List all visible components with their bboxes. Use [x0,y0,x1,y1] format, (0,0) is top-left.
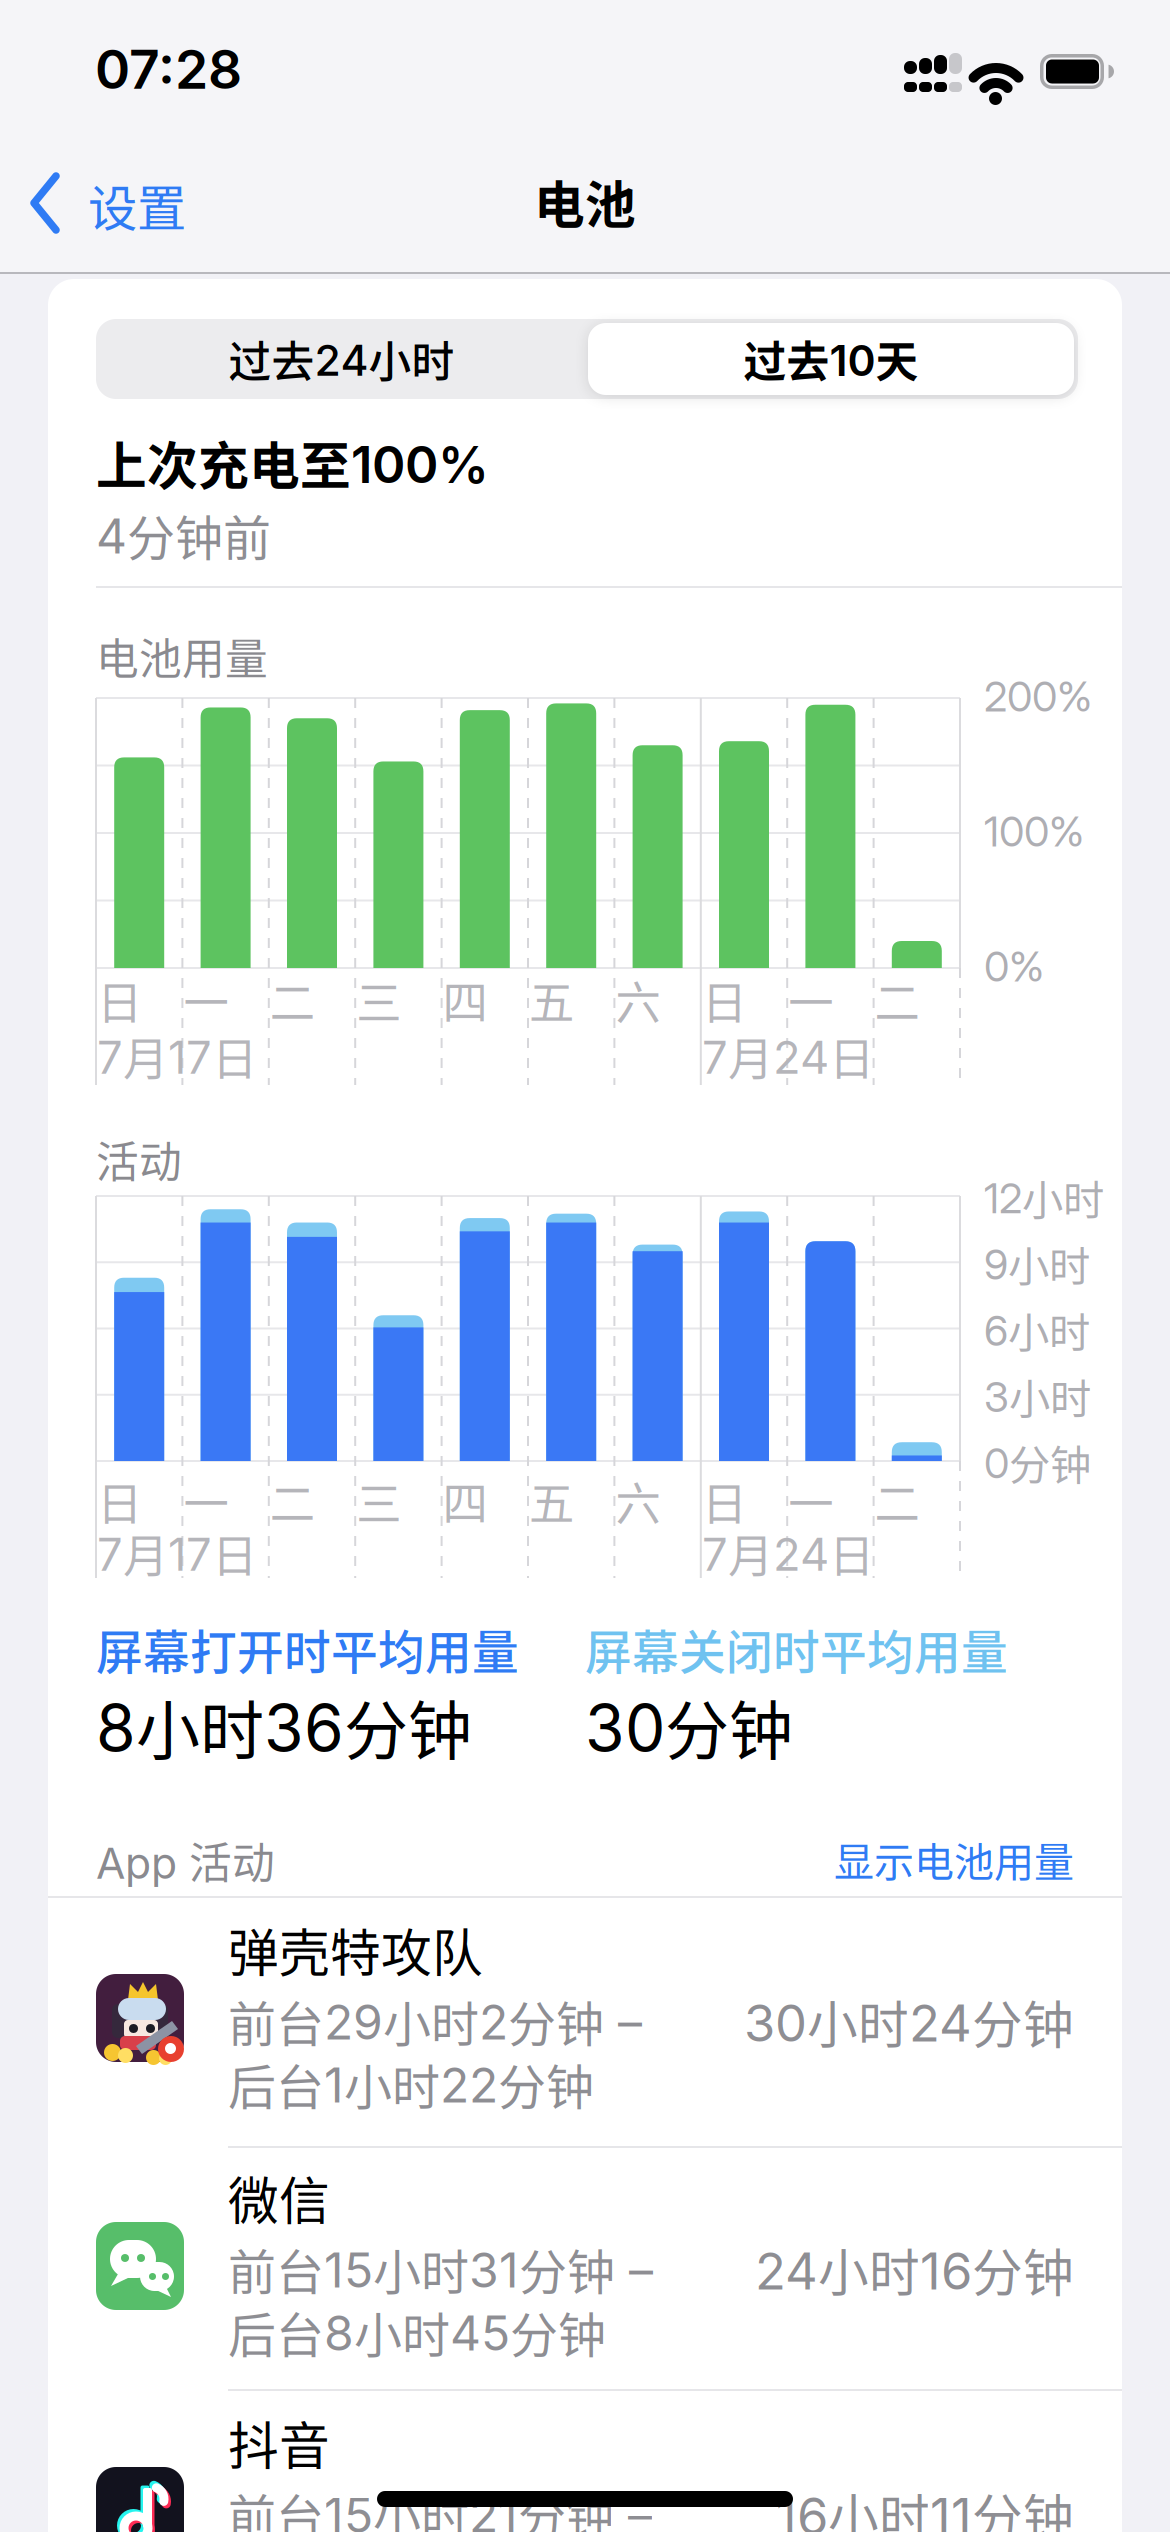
staticText: 0分钟 [984,1433,1091,1491]
button[interactable]: 过去24小时 [96,319,587,399]
staticText: 六 [615,1469,660,1533]
staticText: 过去24小时 [228,329,454,389]
staticText: 抖音 [228,2407,330,2478]
staticText: 四 [443,1469,488,1533]
staticText: 屏幕打开时平均用量 [96,1616,519,1682]
staticText: 电池 [534,166,636,237]
staticText: 弹壳特攻队 [228,1914,483,1985]
staticText: 日 [97,968,142,1032]
staticText: 日 [702,1469,747,1533]
staticText: 6小时 [984,1300,1090,1359]
staticText: 7月24日 [702,1024,874,1088]
staticText: 显示电池用量 [834,1831,1074,1887]
staticText: 五 [529,1469,574,1533]
staticText: 过去10天 [743,329,918,389]
staticText: 一 [788,968,833,1032]
staticText: 4分钟前 [96,501,271,569]
staticText: 16小时11分钟 [776,2479,1074,2532]
staticText: 7月17日 [97,1024,257,1088]
staticText: 二 [875,1469,920,1533]
staticText: 12小时 [984,1168,1104,1226]
button[interactable]: 微信 [48,2146,1122,2392]
staticText: 日 [97,1469,142,1533]
staticText: 一 [788,1469,833,1533]
staticText: 三 [356,1469,401,1533]
staticText: 07:28 [95,38,242,101]
staticText: 上次充电至100% [96,427,489,498]
staticText: 屏幕关闭时平均用量 [585,1616,1008,1682]
staticText: 二 [270,1469,315,1533]
staticText: 24小时16分钟 [755,2234,1074,2305]
staticText: 二 [875,968,920,1032]
staticText: 7月17日 [97,1521,257,1585]
staticText: App 活动 [96,1830,275,1890]
staticText: 六 [615,968,660,1032]
staticText: 三 [356,968,401,1032]
staticText: 日 [702,968,747,1032]
staticText: 0% [984,942,1044,991]
staticText: 前台15小时21分钟 – [228,2480,652,2532]
staticText: 3小时 [984,1367,1091,1425]
staticText: 9小时 [984,1234,1090,1293]
staticText: 前台29小时2分钟 – [228,1987,642,2055]
staticText: 7月24日 [702,1521,874,1585]
staticText: 200% [984,672,1092,721]
staticText: 活动 [96,1129,182,1189]
button[interactable]: 抖音 [48,2391,1122,2532]
button[interactable]: 过去10天 [588,323,1074,395]
staticText: 设置 [88,170,186,240]
staticText: 前台15小时31分钟 – [228,2235,653,2303]
staticText: 一 [183,968,228,1032]
staticText: 后台8小时45分钟 [228,2298,606,2366]
staticText: 后台1小时22分钟 [228,2050,594,2118]
staticText: 100% [984,807,1084,856]
staticText: 一 [183,1469,228,1533]
staticText: 四 [443,968,488,1032]
button[interactable]: 设置 [30,170,200,236]
staticText: 30小时24分钟 [744,1986,1074,2057]
staticText: 二 [270,968,315,1032]
staticText: 30分钟 [585,1681,793,1771]
staticText: 电池用量 [96,626,268,686]
button[interactable]: 显示电池用量 [674,1831,1074,1887]
staticText: 五 [529,968,574,1032]
staticText: 微信 [228,2162,330,2233]
button[interactable]: 弹壳特攻队 [48,1898,1122,2144]
staticText: 8小时36分钟 [96,1681,472,1771]
